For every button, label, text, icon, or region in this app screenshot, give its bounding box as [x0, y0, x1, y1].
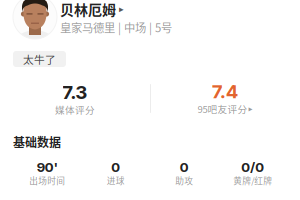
staticText: 进球: [107, 174, 125, 187]
staticText: 媒体评分: [55, 103, 95, 116]
staticText: 黄牌/红牌: [233, 174, 272, 187]
staticText: ▸: [248, 104, 252, 113]
staticText: 太牛了: [23, 51, 56, 67]
staticText: 贝林厄姆: [60, 0, 116, 19]
staticText: 0: [180, 159, 189, 175]
button[interactable]: 贝林厄姆: [0, 0, 300, 42]
staticText: 0/0: [241, 159, 264, 175]
button[interactable]: 7.4: [150, 81, 300, 115]
staticText: 出场时间: [29, 174, 65, 187]
staticText: 0: [111, 159, 120, 175]
staticText: 7.3: [62, 81, 87, 104]
staticText: 90': [37, 159, 58, 175]
staticText: ▸: [119, 4, 124, 15]
staticText: 助攻: [175, 174, 193, 187]
staticText: 基础数据: [13, 133, 61, 150]
staticText: 7.4: [212, 80, 238, 103]
staticText: 皇家马德里 | 中场 | 5号: [60, 19, 172, 35]
button[interactable]: 太牛了: [13, 51, 66, 67]
staticText: 95吧友评分: [197, 102, 247, 116]
